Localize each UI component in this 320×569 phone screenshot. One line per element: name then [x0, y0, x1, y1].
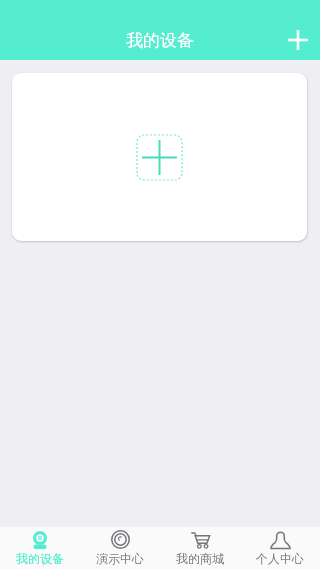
staticText: 我的商城 — [176, 551, 224, 566]
staticText: 我的设备 — [126, 30, 194, 51]
button[interactable]: Add device — [137, 135, 182, 180]
button[interactable]: 演示中心 — [80, 527, 160, 569]
button[interactable]: 个人中心 — [240, 527, 320, 569]
staticText: 个人中心 — [256, 551, 304, 566]
button[interactable]: Add device — [282, 24, 314, 56]
button[interactable]: 我的设备 — [0, 527, 80, 569]
staticText: 演示中心 — [96, 551, 144, 566]
button[interactable]: Add device — [12, 73, 307, 241]
staticText: 我的设备 — [16, 551, 64, 566]
button[interactable]: 我的商城 — [160, 527, 240, 569]
